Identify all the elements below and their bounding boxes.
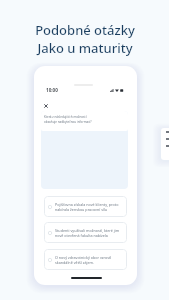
button[interactable]: Pojišťovna získala nové klienty, proto n… — [44, 196, 127, 217]
button[interactable]: Close — [44, 104, 48, 108]
button[interactable]: Studenti využívali možností, které jim n… — [44, 222, 127, 243]
staticText: Studenti využívali možností, které jim n… — [55, 228, 120, 238]
staticText: O nový zdravotnický obor vzrostl skandál… — [55, 255, 120, 265]
staticText: 10:00 — [46, 87, 58, 93]
staticText: Jako u maturity — [37, 39, 133, 57]
staticText: Která z následujících možností obsahuje … — [44, 115, 93, 124]
button[interactable]: O nový zdravotnický obor vzrostl skandál… — [44, 249, 127, 270]
staticText: Podobné otázky — [35, 21, 135, 39]
staticText: Pojišťovna získala nové klienty, proto n… — [55, 202, 120, 212]
